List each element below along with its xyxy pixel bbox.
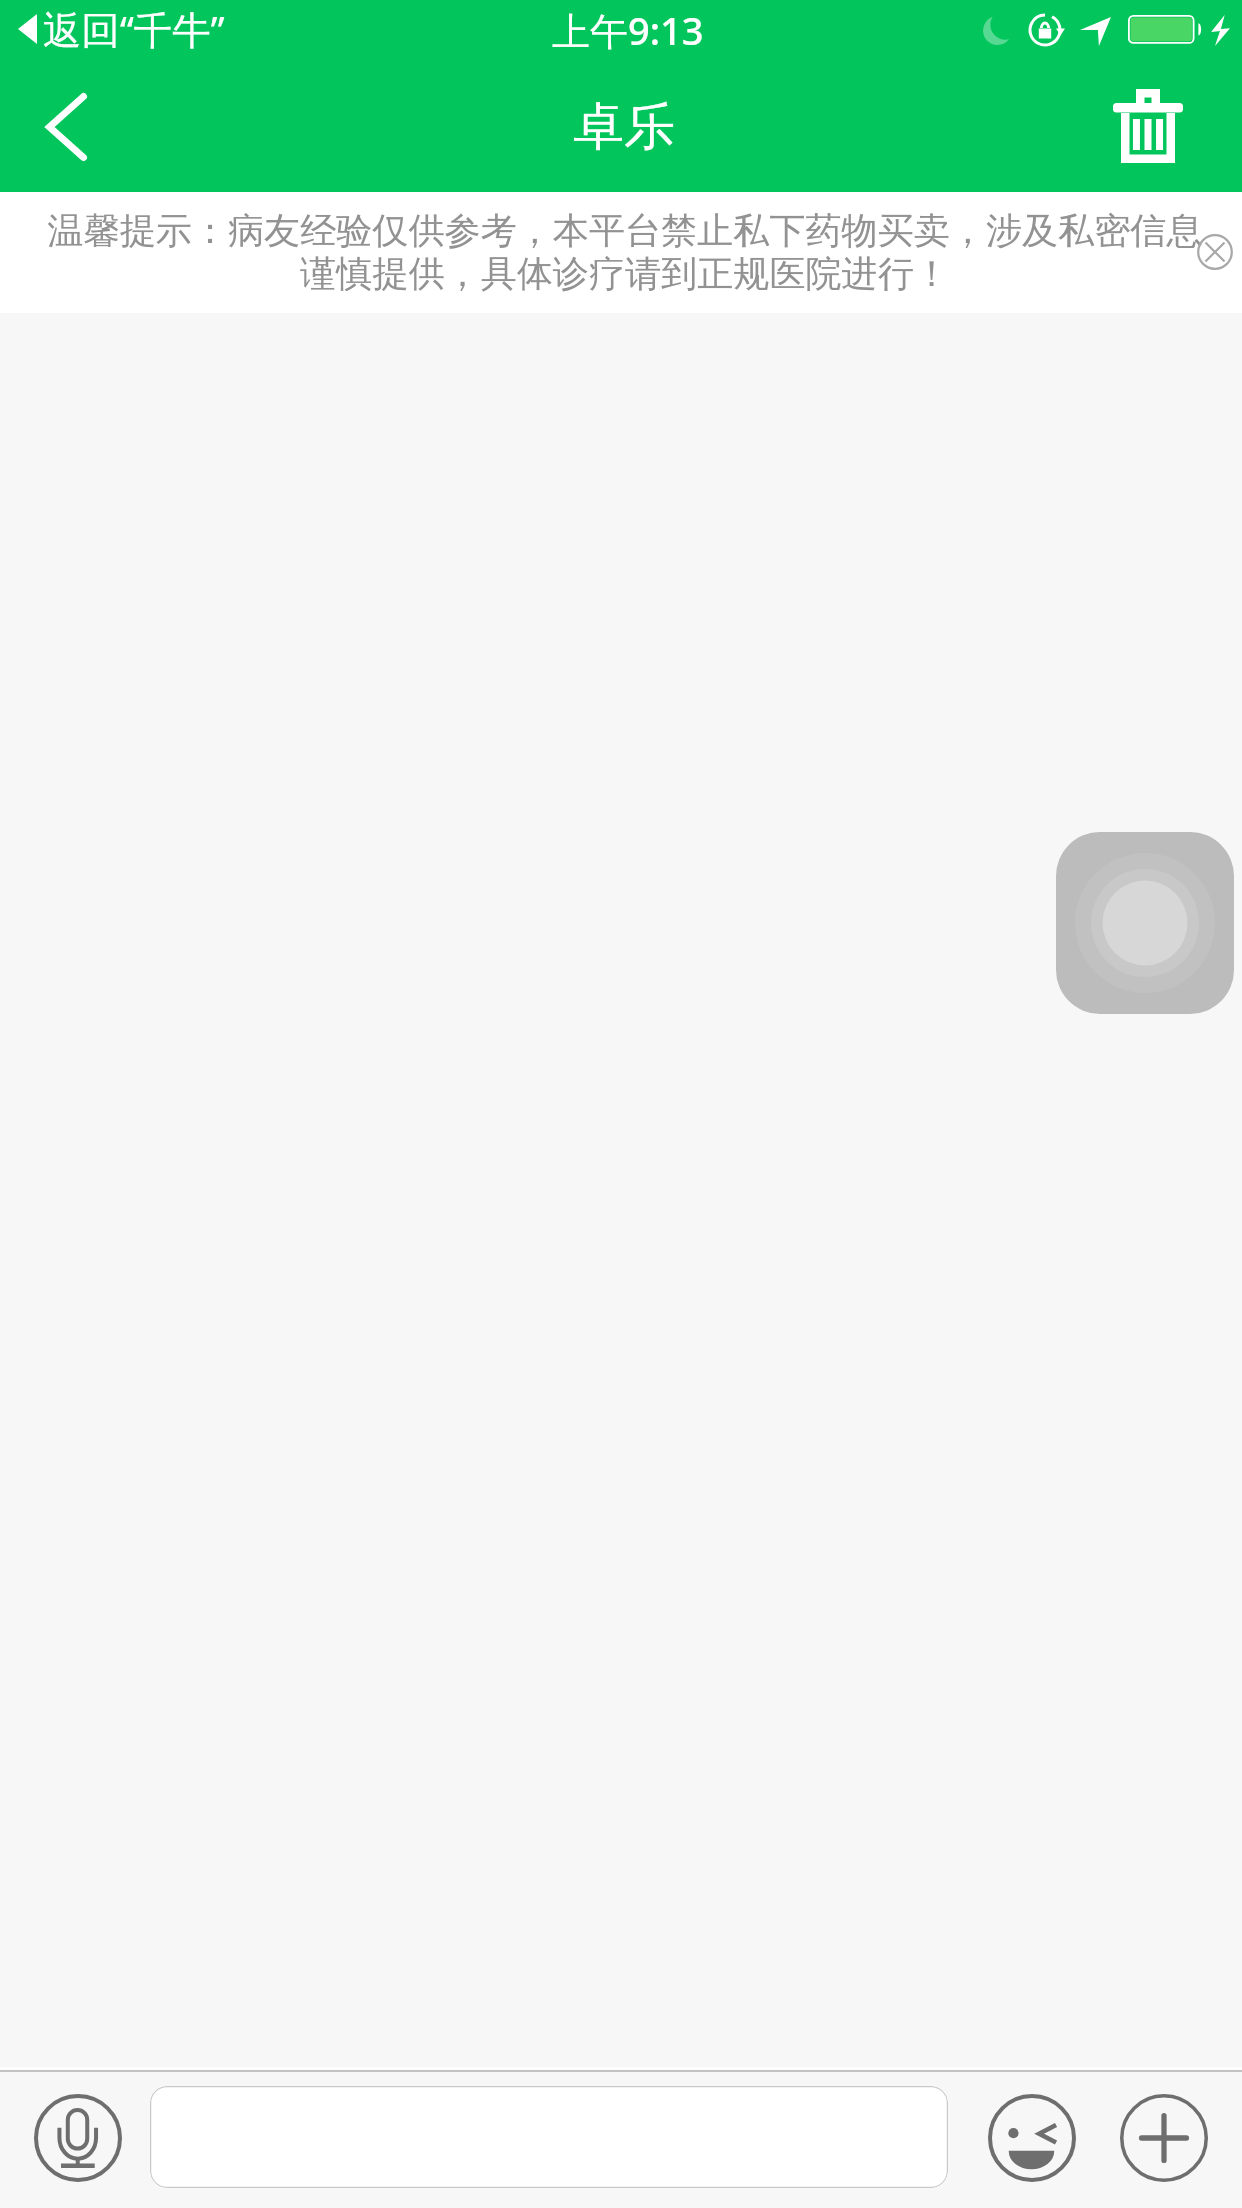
button[interactable]: Voice message	[34, 2094, 122, 2182]
staticText: 卓乐	[573, 95, 675, 159]
button[interactable]: Close	[1191, 228, 1239, 276]
staticText: 温馨提示：病友经验仅供参考，本平台禁止私下药物买卖，涉及私密信息谨慎提供，具体诊…	[40, 208, 1210, 297]
button[interactable]: More	[1120, 2094, 1208, 2182]
button[interactable]: Message input	[150, 2086, 948, 2188]
button[interactable]: Emoji	[988, 2094, 1076, 2182]
button[interactable]: Delete	[1064, 62, 1242, 191]
button[interactable]: AssistiveTouch	[1056, 832, 1234, 1014]
staticText: 上午9:13	[552, 4, 704, 56]
staticText: 返回“千牛”	[43, 3, 225, 56]
button[interactable]: Back	[0, 62, 133, 192]
button[interactable]: 返回“千牛”	[18, 1, 225, 57]
